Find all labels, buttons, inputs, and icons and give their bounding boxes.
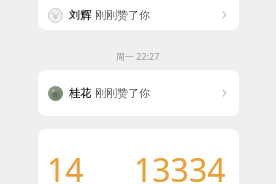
staticText: 13334 bbox=[134, 148, 226, 184]
staticText: 刘辉 bbox=[69, 8, 91, 22]
button[interactable]: 刘辉 bbox=[38, 0, 239, 30]
button[interactable]: 14 bbox=[38, 129, 239, 184]
staticText: 周一 22:27 bbox=[116, 50, 160, 62]
staticText: 14 bbox=[47, 148, 84, 184]
staticText: 刚刚赞了你 bbox=[95, 86, 150, 100]
staticText: 刚刚赞了你 bbox=[95, 8, 150, 22]
staticText: 桂花 bbox=[69, 86, 91, 100]
button[interactable]: 桂花 bbox=[38, 70, 239, 116]
